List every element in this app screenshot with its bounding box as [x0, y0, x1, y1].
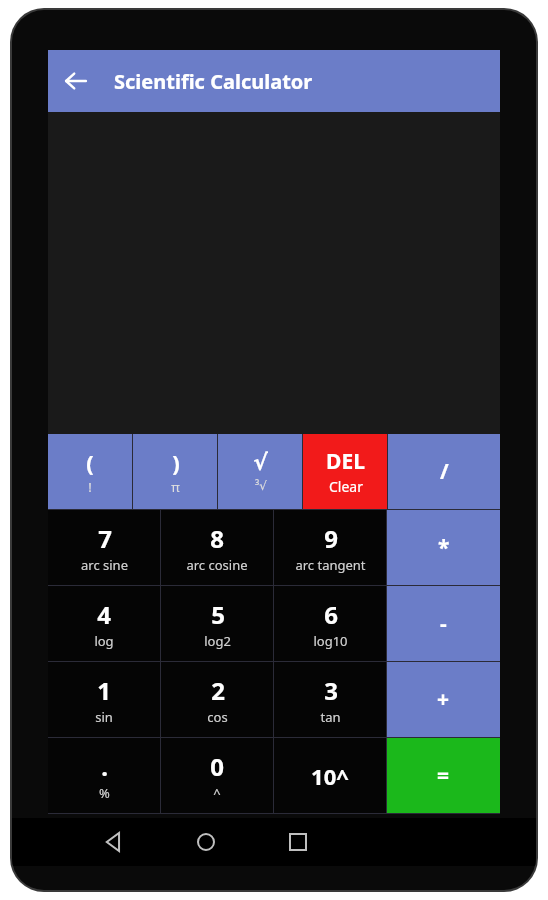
staticText: log2 [204, 632, 231, 650]
staticText: tan [320, 708, 341, 726]
staticText: arc sine [81, 556, 128, 574]
button[interactable]: 3 [274, 662, 386, 737]
button[interactable]: DEL [303, 434, 387, 509]
staticText: + [437, 685, 450, 714]
staticText: 5 [211, 598, 225, 631]
button[interactable]: 1 [48, 662, 160, 737]
staticText: - [440, 609, 447, 638]
staticText: 9 [324, 522, 338, 555]
button[interactable]: 7 [48, 510, 160, 585]
staticText: ) [172, 447, 180, 477]
button[interactable]: + [387, 662, 500, 737]
staticText: sin [95, 708, 113, 726]
staticText: % [99, 784, 110, 802]
staticText: 3 [324, 674, 338, 707]
staticText: 0 [210, 750, 224, 783]
button[interactable]: ) [133, 434, 217, 509]
staticText: 8 [210, 522, 224, 555]
button[interactable]: 4 [48, 586, 160, 661]
button[interactable]: Back [90, 818, 138, 866]
button[interactable]: / [388, 434, 500, 509]
staticText: 10^ [311, 761, 349, 791]
staticText: ! [88, 478, 92, 496]
button[interactable]: Recent apps [274, 818, 322, 866]
staticText: Scientific Calculator [114, 68, 313, 95]
button[interactable]: Home [182, 818, 230, 866]
staticText: Clear [329, 477, 363, 496]
button[interactable]: 8 [161, 510, 273, 585]
staticText: 4 [97, 598, 111, 631]
button[interactable]: 9 [274, 510, 386, 585]
staticText: log10 [313, 632, 348, 650]
staticText: . [101, 750, 108, 783]
button[interactable]: . [48, 738, 160, 813]
staticText: ³√ [255, 477, 267, 493]
button[interactable]: 0 [161, 738, 273, 813]
staticText: 6 [324, 598, 338, 631]
button[interactable]: * [387, 510, 500, 585]
staticText: ( [86, 447, 94, 477]
button[interactable]: 2 [161, 662, 273, 737]
staticText: log [94, 632, 114, 650]
button[interactable]: = [387, 738, 500, 813]
staticText: cos [207, 708, 228, 726]
staticText: √ [253, 450, 268, 476]
staticText: arc tangent [295, 556, 366, 574]
button[interactable]: - [387, 586, 500, 661]
staticText: / [440, 457, 449, 486]
staticText: ^ [213, 784, 221, 802]
button[interactable]: 6 [274, 586, 386, 661]
staticText: arc cosine [186, 556, 248, 574]
staticText: = [437, 761, 450, 790]
button[interactable]: 5 [161, 586, 273, 661]
staticText: 7 [98, 522, 112, 555]
staticText: 1 [97, 674, 111, 707]
staticText: * [438, 533, 450, 562]
staticText: DEL [326, 447, 365, 476]
button[interactable]: ( [48, 434, 132, 509]
button[interactable]: √ [218, 434, 302, 509]
staticText: 2 [211, 674, 225, 707]
button[interactable]: 10^ [274, 738, 386, 813]
button[interactable]: Navigate up [48, 53, 104, 109]
staticText: π [171, 478, 180, 496]
